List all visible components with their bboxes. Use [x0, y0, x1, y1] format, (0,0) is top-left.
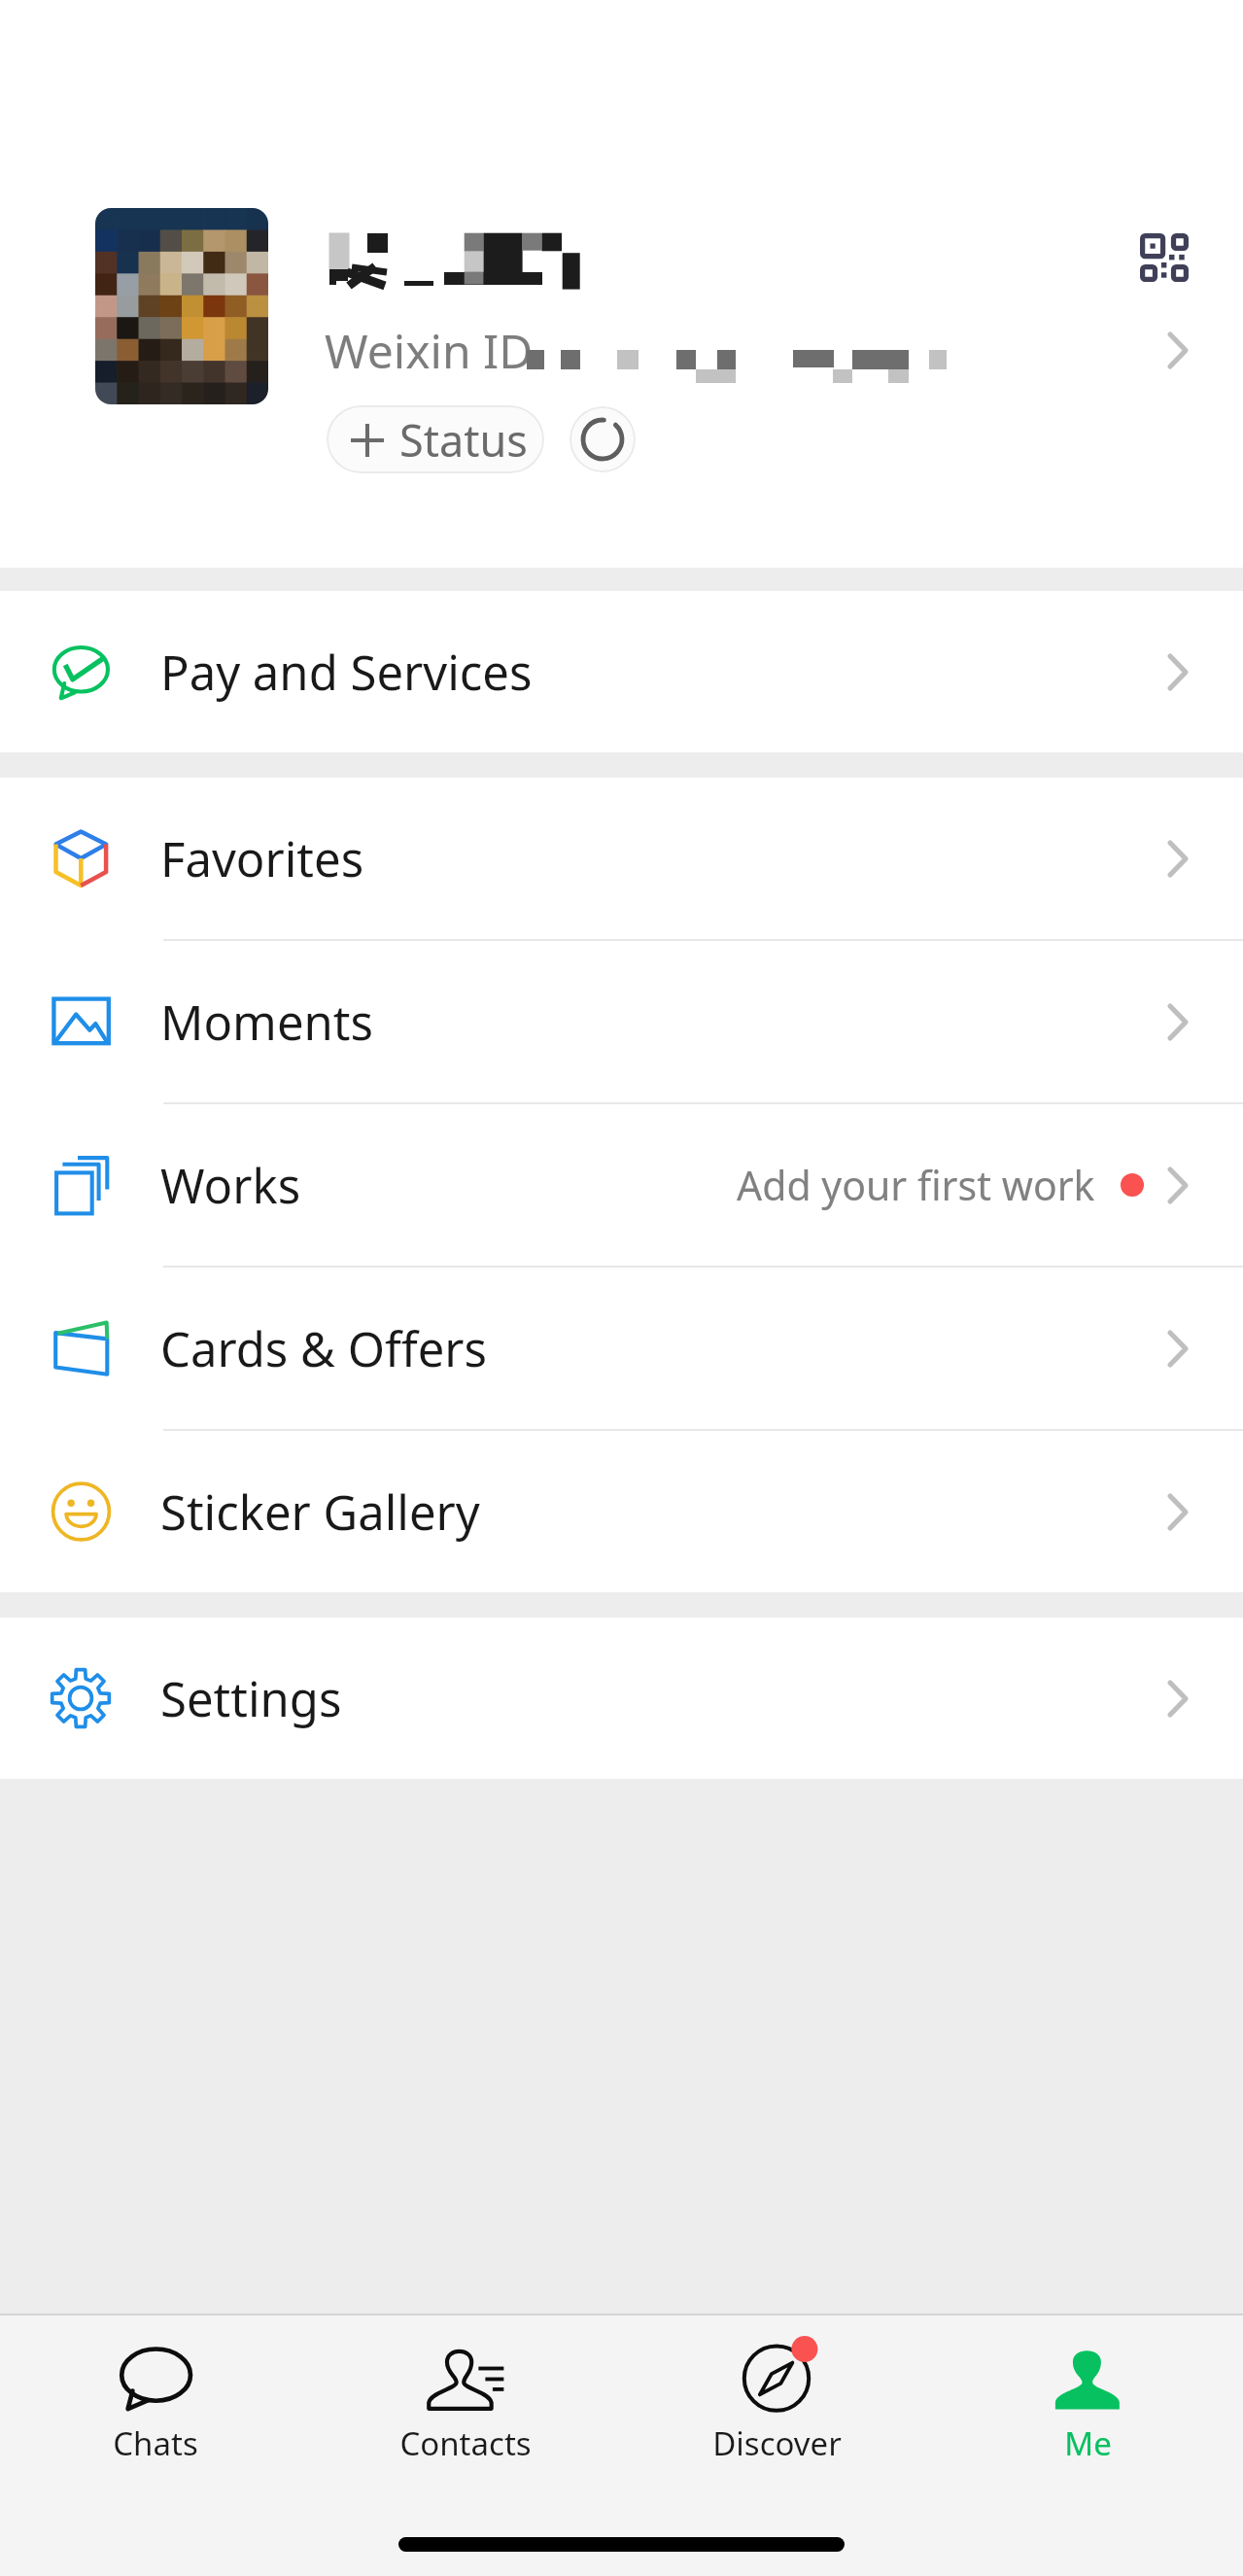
staticText: Contacts	[399, 2421, 532, 2465]
button[interactable]: Profile photo	[95, 208, 268, 404]
staticText: Status	[399, 410, 528, 470]
staticText: Moments	[160, 990, 373, 1055]
staticText: Settings	[160, 1666, 342, 1731]
staticText: Sticker Gallery	[160, 1479, 480, 1545]
button[interactable]: Contacts	[310, 2315, 621, 2489]
staticText: Me	[1064, 2421, 1112, 2465]
staticText: Chats	[113, 2421, 198, 2465]
staticText: Add your first work	[737, 1158, 1095, 1212]
button[interactable]: Works	[0, 1104, 1243, 1266]
button[interactable]: Settings	[0, 1618, 1243, 1779]
staticText: Discover	[712, 2421, 842, 2465]
button[interactable]: Refresh status	[570, 406, 636, 472]
staticText: Cards & Offers	[160, 1316, 487, 1381]
button[interactable]: Cards & Offers	[0, 1268, 1243, 1429]
button[interactable]: Favorites	[0, 778, 1243, 939]
button[interactable]: My QR Code	[1140, 233, 1189, 282]
button[interactable]: Sticker Gallery	[0, 1431, 1243, 1592]
button[interactable]: Me	[932, 2315, 1243, 2489]
staticText: Weixin ID	[325, 319, 534, 382]
button[interactable]: Status	[327, 405, 544, 473]
staticText: Works	[160, 1153, 301, 1218]
button[interactable]: Discover	[621, 2315, 932, 2489]
button[interactable]: Pay and Services	[0, 591, 1243, 752]
staticText: Pay and Services	[160, 640, 533, 705]
button[interactable]: Chats	[0, 2315, 310, 2489]
staticText: Favorites	[160, 826, 364, 891]
button[interactable]: Moments	[0, 941, 1243, 1102]
